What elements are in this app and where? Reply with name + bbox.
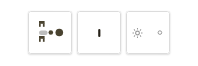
button[interactable]: Media controls: [28, 11, 72, 54]
button[interactable]: Brightness: [126, 11, 170, 54]
button[interactable]: Volume: [77, 11, 121, 54]
